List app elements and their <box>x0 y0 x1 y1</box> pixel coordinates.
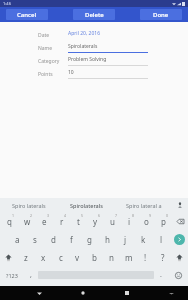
button[interactable]: v <box>69 248 86 266</box>
staticText: 2 <box>30 213 33 218</box>
button[interactable]: 9 <box>138 212 155 230</box>
staticText: z <box>24 252 28 263</box>
button[interactable]: 3 <box>36 212 53 230</box>
staticText: Spiro lateral a <box>126 202 162 209</box>
staticText: April 20, 2016 <box>68 30 101 37</box>
staticText: 5 <box>81 213 84 218</box>
staticText: y <box>93 216 98 227</box>
button[interactable]: 6 <box>87 212 104 230</box>
staticText: g <box>87 234 92 245</box>
button[interactable]: 4 <box>53 212 70 230</box>
button[interactable]: l <box>152 230 170 248</box>
button[interactable]: Emoji <box>168 266 188 284</box>
button[interactable]: Shift <box>171 248 188 266</box>
staticText: n <box>109 252 114 263</box>
staticText: e <box>42 216 47 227</box>
staticText: 4 <box>64 213 67 218</box>
staticText: o <box>144 216 149 227</box>
staticText: 1:46 <box>3 1 11 6</box>
button[interactable]: s <box>26 230 44 248</box>
button[interactable]: Delete <box>73 9 115 20</box>
button[interactable]: x <box>35 248 52 266</box>
button[interactable]: Hide keyboard <box>164 286 178 300</box>
button[interactable]: . <box>154 266 168 284</box>
button[interactable]: ?123 <box>0 266 24 284</box>
button[interactable]: 5 <box>70 212 87 230</box>
staticText: 10 <box>68 69 74 76</box>
button[interactable]: g <box>80 230 98 248</box>
button[interactable]: d <box>44 230 62 248</box>
button[interactable]: b <box>86 248 103 266</box>
button[interactable]: Spiro lateral a <box>115 198 172 212</box>
staticText: Spiro laterals <box>12 202 46 209</box>
button[interactable]: Recents <box>120 286 134 300</box>
button[interactable]: j <box>116 230 134 248</box>
button[interactable]: 1 <box>0 212 18 230</box>
staticText: w <box>24 216 31 227</box>
staticText: ?123 <box>6 272 18 279</box>
staticText: h <box>105 234 110 245</box>
button[interactable]: 0 <box>155 212 172 230</box>
staticText: d <box>51 234 56 245</box>
button[interactable]: h <box>98 230 116 248</box>
staticText: a <box>15 234 20 245</box>
button[interactable]: Cancel <box>6 9 48 20</box>
staticText: 3 <box>47 213 50 218</box>
button[interactable]: Spiro laterals <box>0 198 58 212</box>
button[interactable]: k <box>134 230 152 248</box>
button[interactable]: Enter <box>170 230 188 248</box>
button[interactable]: Home <box>76 286 90 300</box>
staticText: Done <box>153 11 169 19</box>
staticText: 1 <box>12 213 15 218</box>
button[interactable]: Category <box>38 55 148 67</box>
staticText: 0 <box>166 213 169 218</box>
button[interactable]: Voice input <box>172 198 188 212</box>
staticText: ? <box>161 252 165 263</box>
staticText: ! <box>144 252 147 263</box>
button[interactable]: 7 <box>104 212 121 230</box>
staticText: 9 <box>149 213 152 218</box>
staticText: Category <box>38 58 68 65</box>
staticText: u <box>110 216 115 227</box>
button[interactable]: n <box>103 248 120 266</box>
staticText: Date <box>38 32 68 39</box>
staticText: 6 <box>98 213 101 218</box>
button[interactable]: f <box>62 230 80 248</box>
staticText: Problem Solving <box>68 56 107 63</box>
button[interactable]: m <box>120 248 137 266</box>
button[interactable]: z <box>17 248 35 266</box>
staticText: i <box>128 216 131 227</box>
staticText: p <box>161 216 166 227</box>
staticText: , <box>30 270 32 280</box>
button[interactable]: 2 <box>18 212 36 230</box>
button[interactable]: Back <box>32 286 46 300</box>
staticText: v <box>75 252 80 263</box>
staticText: 8 <box>132 213 135 218</box>
staticText: m <box>125 252 133 263</box>
staticText: f <box>70 234 73 245</box>
button[interactable]: ! <box>137 248 154 266</box>
staticText: 7 <box>115 213 118 218</box>
staticText: l <box>160 234 163 245</box>
button[interactable]: Backspace <box>172 212 188 230</box>
button[interactable]: Shift <box>0 248 17 266</box>
staticText: Name <box>38 45 68 52</box>
staticText: r <box>60 216 64 227</box>
button[interactable]: Date <box>38 29 148 41</box>
button[interactable]: 8 <box>121 212 138 230</box>
button[interactable]: Points <box>38 68 148 80</box>
staticText: j <box>124 234 127 245</box>
staticText: c <box>59 252 63 263</box>
staticText: q <box>7 216 12 227</box>
staticText: . <box>160 270 162 280</box>
staticText: Cancel <box>17 11 37 19</box>
button[interactable]: c <box>52 248 69 266</box>
button[interactable]: a <box>8 230 26 248</box>
button[interactable]: Name <box>38 42 148 54</box>
button[interactable]: Spirolaterals <box>58 198 115 212</box>
staticText: t <box>77 216 80 227</box>
button[interactable]: Done <box>140 9 182 20</box>
button[interactable]: ? <box>154 248 171 266</box>
button[interactable]: , <box>24 266 38 284</box>
